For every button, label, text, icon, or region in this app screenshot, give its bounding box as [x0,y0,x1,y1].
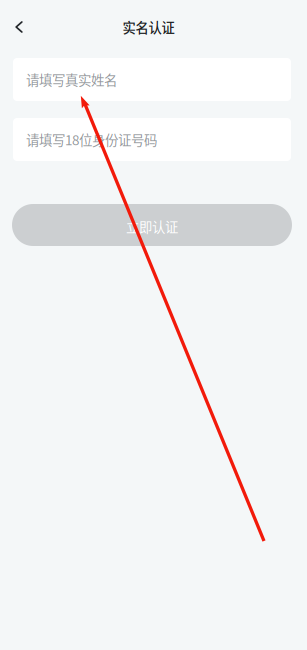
staticText: 实名认证 [122,17,174,37]
button[interactable]: 请填写真实姓名 [13,58,291,101]
button[interactable]: Back [0,0,34,54]
staticText: 请填写18位身份证号码 [26,130,157,149]
staticText: 请填写真实姓名 [26,70,117,89]
button[interactable]: 请填写18位身份证号码 [13,118,291,161]
staticText: 立即认证 [126,217,178,236]
button[interactable]: 立即认证 [12,204,292,246]
